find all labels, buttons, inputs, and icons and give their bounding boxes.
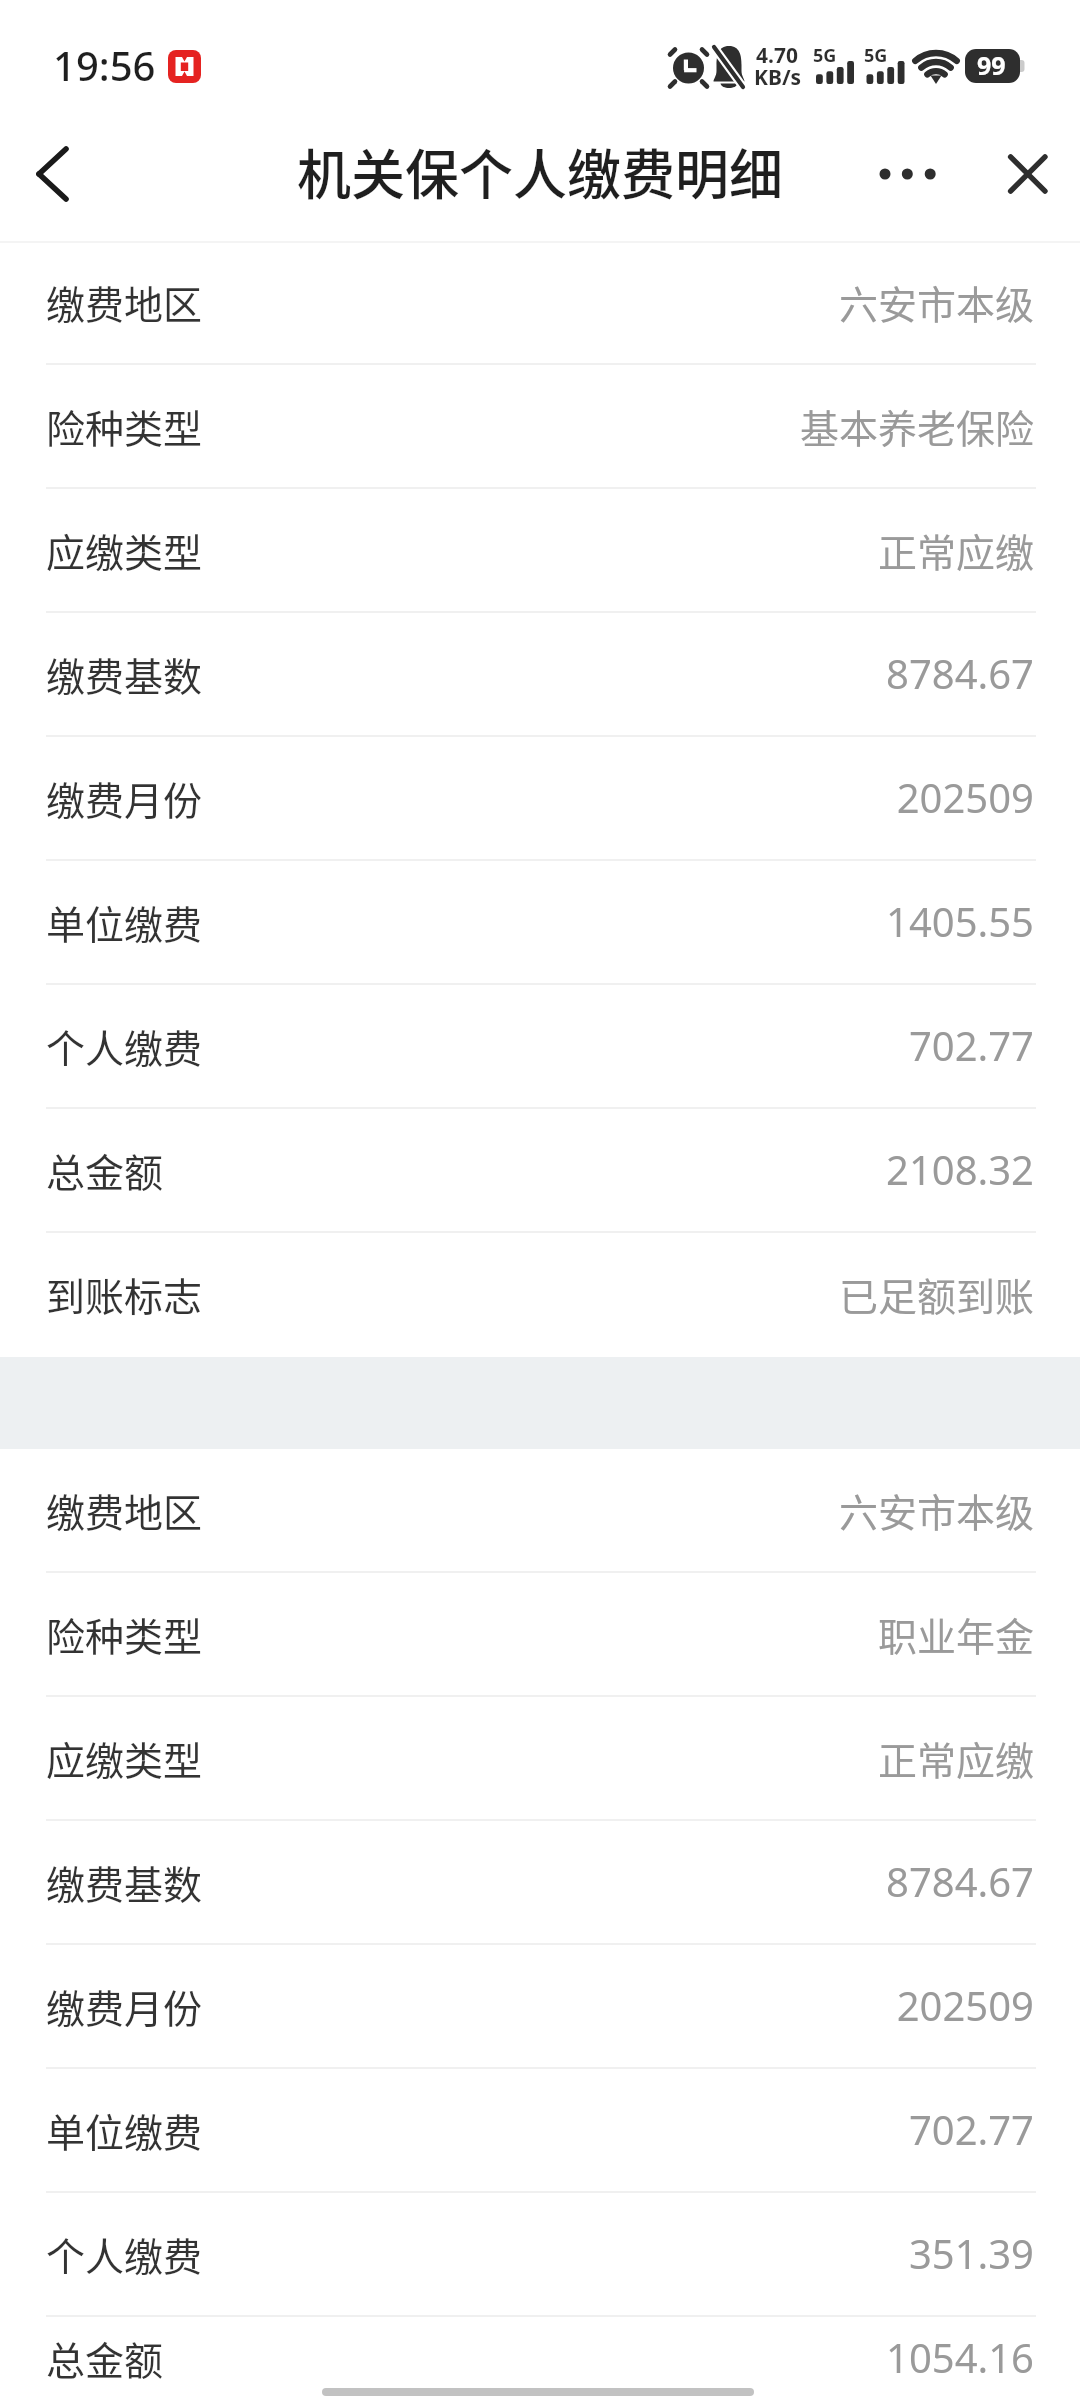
staticText: 202509 <box>896 770 1034 824</box>
button[interactable]: 总金额 <box>0 1109 1080 1233</box>
staticText: 六安市本级 <box>838 1482 1034 1538</box>
button[interactable]: 险种类型 <box>0 365 1080 489</box>
staticText: 缴费地区 <box>46 1482 203 1538</box>
staticText: 缴费月份 <box>46 1978 203 2034</box>
staticText: 个人缴费 <box>46 1018 203 1074</box>
staticText: 总金额 <box>46 1142 164 1198</box>
staticText: 基本养老保险 <box>799 398 1034 454</box>
staticText: 8784.67 <box>886 646 1034 700</box>
staticText: 5G <box>864 43 888 68</box>
staticText: 8784.67 <box>886 1854 1034 1908</box>
staticText: 19:56 <box>53 38 156 92</box>
staticText: 单位缴费 <box>46 894 203 950</box>
staticText: 2108.32 <box>886 1142 1034 1196</box>
button[interactable]: 缴费月份 <box>0 737 1080 861</box>
button[interactable]: 缴费基数 <box>0 613 1080 737</box>
button[interactable]: More options <box>880 120 990 228</box>
staticText: 应缴类型 <box>46 522 203 578</box>
staticText: 351.39 <box>908 2226 1034 2280</box>
button[interactable]: 应缴类型 <box>0 1697 1080 1821</box>
staticText: 单位缴费 <box>46 2102 203 2158</box>
staticText: 职业年金 <box>877 1606 1034 1662</box>
button[interactable]: 个人缴费 <box>0 985 1080 1109</box>
staticText: 缴费月份 <box>46 770 203 826</box>
staticText: 99 <box>977 48 1006 82</box>
staticText: 202509 <box>896 1978 1034 2032</box>
staticText: 1405.55 <box>886 894 1034 948</box>
staticText: 个人缴费 <box>46 2226 203 2282</box>
button[interactable]: 缴费地区 <box>0 1449 1080 1573</box>
staticText: 缴费地区 <box>46 274 203 330</box>
staticText: 1054.16 <box>886 2330 1034 2384</box>
staticText: 险种类型 <box>46 1606 203 1662</box>
button[interactable]: 到账标志 <box>0 1233 1080 1357</box>
button[interactable]: Close <box>990 120 1080 228</box>
button[interactable]: 缴费地区 <box>0 241 1080 365</box>
staticText: 5G <box>813 43 837 68</box>
staticText: 已足额到账 <box>838 1266 1034 1322</box>
staticText: 702.77 <box>908 1018 1034 1072</box>
staticText: 六安市本级 <box>838 274 1034 330</box>
staticText: 到账标志 <box>46 1266 203 1322</box>
button[interactable]: 缴费月份 <box>0 1945 1080 2069</box>
button[interactable]: 险种类型 <box>0 1573 1080 1697</box>
staticText: 702.77 <box>908 2102 1034 2156</box>
staticText: 总金额 <box>46 2330 164 2386</box>
button[interactable]: Back <box>0 120 110 228</box>
staticText: 险种类型 <box>46 398 203 454</box>
staticText: KB/s <box>754 63 802 92</box>
staticText: 缴费基数 <box>46 646 203 702</box>
staticText: 缴费基数 <box>46 1854 203 1910</box>
staticText: 正常应缴 <box>877 1730 1034 1786</box>
button[interactable]: 个人缴费 <box>0 2193 1080 2317</box>
button[interactable]: 总金额 <box>0 2317 1080 2400</box>
button[interactable]: 应缴类型 <box>0 489 1080 613</box>
button[interactable]: 单位缴费 <box>0 2069 1080 2193</box>
staticText: 正常应缴 <box>877 522 1034 578</box>
staticText: 4.70 <box>756 41 798 70</box>
staticText: 应缴类型 <box>46 1730 203 1786</box>
button[interactable]: 缴费基数 <box>0 1821 1080 1945</box>
staticText: 机关保个人缴费明细 <box>297 132 783 210</box>
button[interactable]: 单位缴费 <box>0 861 1080 985</box>
